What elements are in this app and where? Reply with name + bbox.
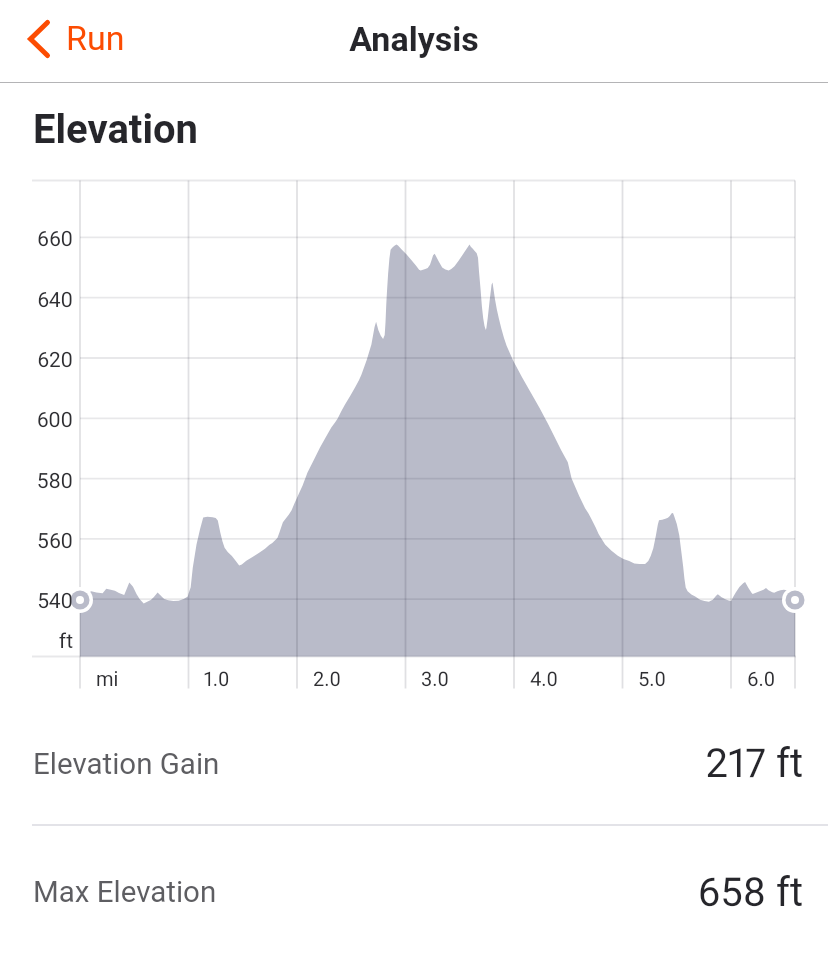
staticText: Analysis [0, 19, 828, 59]
staticText: Run [66, 18, 125, 58]
staticText: 560 [0, 529, 73, 554]
staticText: 600 [0, 408, 73, 433]
staticText: 658 ft [0, 869, 803, 916]
staticText: 640 [0, 288, 73, 313]
button[interactable]: Max Elevation [0, 826, 828, 954]
button[interactable]: Back to Run [14, 5, 148, 71]
staticText: 540 [0, 589, 73, 614]
staticText: 4.0 [530, 667, 559, 690]
staticText: 217 ft [0, 740, 803, 787]
staticText: 620 [0, 348, 73, 373]
staticText: Max Elevation [33, 875, 217, 910]
staticText: Elevation Gain [33, 747, 220, 782]
staticText: 580 [0, 469, 73, 494]
staticText: 6.0 [747, 667, 776, 690]
staticText: 5.0 [638, 667, 667, 690]
staticText: mi [96, 667, 119, 690]
staticText: ft [0, 629, 73, 654]
staticText: 2.0 [313, 667, 342, 690]
staticText: 1.0 [204, 667, 230, 690]
staticText: Elevation [33, 106, 198, 153]
button[interactable]: Elevation Gain [0, 698, 828, 825]
staticText: 660 [0, 227, 73, 252]
staticText: 3.0 [421, 667, 450, 690]
